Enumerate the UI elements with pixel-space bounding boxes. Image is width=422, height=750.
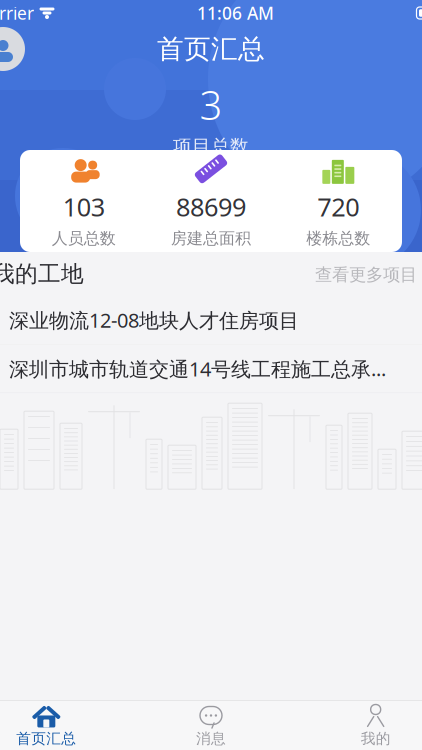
- button[interactable]: 深业物流12-08地块人才住房项目: [0, 296, 422, 344]
- button[interactable]: 首页汇总: [0, 701, 129, 750]
- staticText: 11:06 AM: [197, 1, 274, 24]
- staticText: 房建总面积: [171, 228, 251, 248]
- staticText: 项目总数: [173, 135, 249, 158]
- staticText: 88699: [176, 190, 246, 223]
- staticText: 消息: [196, 729, 226, 747]
- button[interactable]: 深圳市城市轨道交通14号线工程施工总承包车...: [0, 345, 422, 393]
- staticText: 首页汇总: [16, 729, 76, 747]
- staticText: 我的工地: [0, 260, 84, 288]
- staticText: 查看更多项目 >>: [315, 262, 422, 285]
- staticText: 楼栋总数: [306, 228, 370, 248]
- staticText: 首页汇总: [157, 33, 265, 65]
- button[interactable]: 我的: [293, 701, 422, 750]
- button[interactable]: Profile: [0, 27, 25, 71]
- staticText: 深业物流12-08地块人才住房项目: [9, 307, 299, 333]
- staticText: 人员总数: [52, 228, 116, 248]
- staticText: 720: [317, 190, 359, 223]
- button[interactable]: 消息: [129, 701, 293, 750]
- staticText: 3: [199, 78, 222, 131]
- button[interactable]: 查看更多项目 >>: [315, 262, 422, 285]
- staticText: 深圳市城市轨道交通14号线工程施工总承包车...: [9, 355, 402, 382]
- staticText: 103: [63, 190, 105, 223]
- staticText: Carrier: [0, 1, 34, 24]
- staticText: 我的: [361, 729, 391, 747]
